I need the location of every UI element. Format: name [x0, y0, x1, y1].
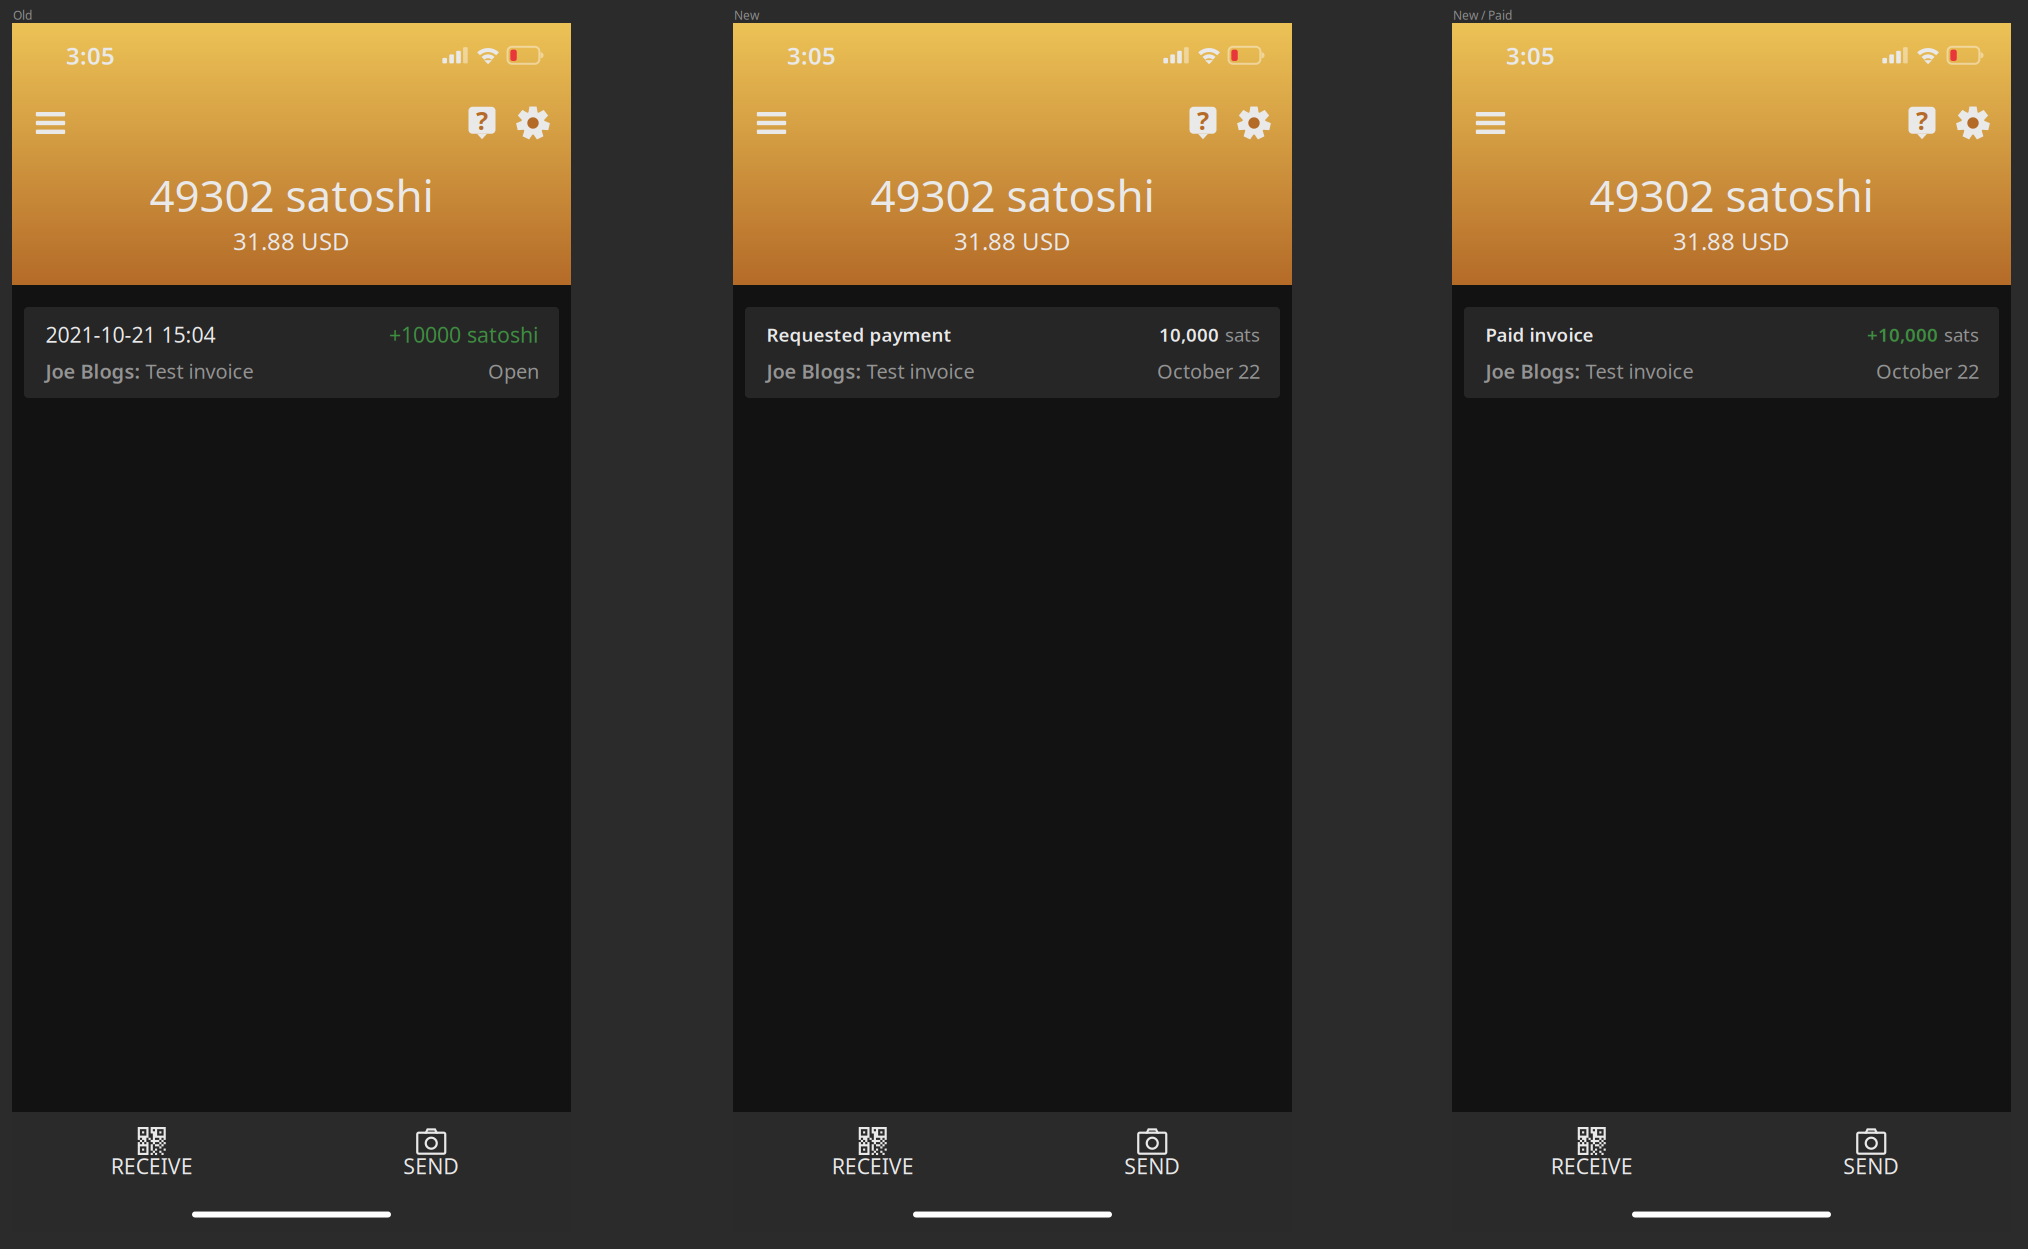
button[interactable]: Help: [457, 102, 507, 144]
button[interactable]: Menu: [745, 102, 798, 144]
button[interactable]: Help: [1178, 102, 1228, 144]
staticText: sats: [1225, 322, 1260, 347]
button[interactable]: Settings: [1947, 102, 1999, 144]
staticText: ?: [476, 103, 488, 137]
staticText: 49302 satoshi: [870, 166, 1154, 224]
staticText: +10,000: [1867, 322, 1938, 347]
button[interactable]: Settings: [507, 102, 559, 144]
staticText: 49302 satoshi: [1589, 166, 1873, 224]
staticText: Open: [488, 358, 539, 384]
staticText: RECEIVE: [1551, 1152, 1633, 1180]
button[interactable]: Menu: [24, 102, 77, 144]
staticText: Paid invoice: [1485, 322, 1593, 347]
button[interactable]: Settings: [1228, 102, 1280, 144]
staticText: 2021-10-21 15:04: [45, 320, 215, 349]
button[interactable]: RECEIVE: [733, 1112, 1012, 1232]
staticText: Test invoice: [1585, 358, 1693, 384]
staticText: New / Paid: [1453, 7, 1512, 23]
staticText: SEND: [403, 1152, 459, 1180]
staticText: ?: [1197, 103, 1209, 137]
staticText: Joe Blogs:: [1485, 358, 1580, 384]
button[interactable]: SEND: [1012, 1112, 1292, 1232]
button[interactable]: RECEIVE: [12, 1112, 291, 1232]
button[interactable]: SEND: [1731, 1112, 2011, 1232]
staticText: ?: [1916, 103, 1928, 137]
button[interactable]: Menu: [1464, 102, 1517, 144]
staticText: 3:05: [1506, 40, 1555, 71]
staticText: Requested payment: [766, 322, 951, 347]
staticText: Joe Blogs:: [45, 358, 140, 384]
button[interactable]: Paid invoice: [1464, 307, 1999, 398]
staticText: October 22: [1876, 358, 1979, 384]
button[interactable]: Requested payment: [745, 307, 1280, 398]
button[interactable]: RECEIVE: [1452, 1112, 1731, 1232]
staticText: Old: [13, 7, 32, 23]
staticText: 31.88 USD: [954, 225, 1071, 257]
staticText: sats: [1944, 322, 1979, 347]
staticText: +10000 satoshi: [389, 320, 539, 349]
staticText: 3:05: [66, 40, 115, 71]
button[interactable]: SEND: [291, 1112, 571, 1232]
staticText: Joe Blogs:: [766, 358, 861, 384]
staticText: Test invoice: [866, 358, 974, 384]
staticText: RECEIVE: [832, 1152, 914, 1180]
staticText: 10,000: [1159, 322, 1219, 347]
button[interactable]: 2021-10-21 15:04: [24, 307, 559, 398]
staticText: 49302 satoshi: [149, 166, 433, 224]
staticText: 31.88 USD: [1673, 225, 1790, 257]
staticText: New: [734, 7, 759, 23]
staticText: 3:05: [787, 40, 836, 71]
staticText: SEND: [1843, 1152, 1899, 1180]
staticText: October 22: [1157, 358, 1260, 384]
button[interactable]: Help: [1897, 102, 1947, 144]
staticText: Test invoice: [145, 358, 253, 384]
staticText: SEND: [1124, 1152, 1180, 1180]
staticText: RECEIVE: [111, 1152, 193, 1180]
staticText: 31.88 USD: [233, 225, 350, 257]
